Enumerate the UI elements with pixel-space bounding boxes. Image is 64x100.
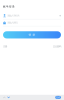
staticText: 注册 [3,45,7,48]
button[interactable]: 登 录 [3,31,61,38]
staticText: 忘记密码 [53,45,61,48]
staticText: 完成 [56,96,60,99]
button[interactable]: 注册 [3,45,7,48]
button[interactable]: 请输入手机号 [3,12,61,19]
staticText: 登 录 [28,33,35,37]
staticText: 请输入手机号 [7,14,19,17]
button[interactable]: Next field [7,96,10,98]
button[interactable]: 忘记密码 [53,45,61,48]
staticText: 账号登录 [3,5,15,8]
staticText: 请输入密码 [7,21,17,24]
button[interactable]: 请输入密码 [3,19,61,26]
button[interactable]: 完成 [55,96,61,99]
button[interactable]: Previous field [3,96,6,98]
